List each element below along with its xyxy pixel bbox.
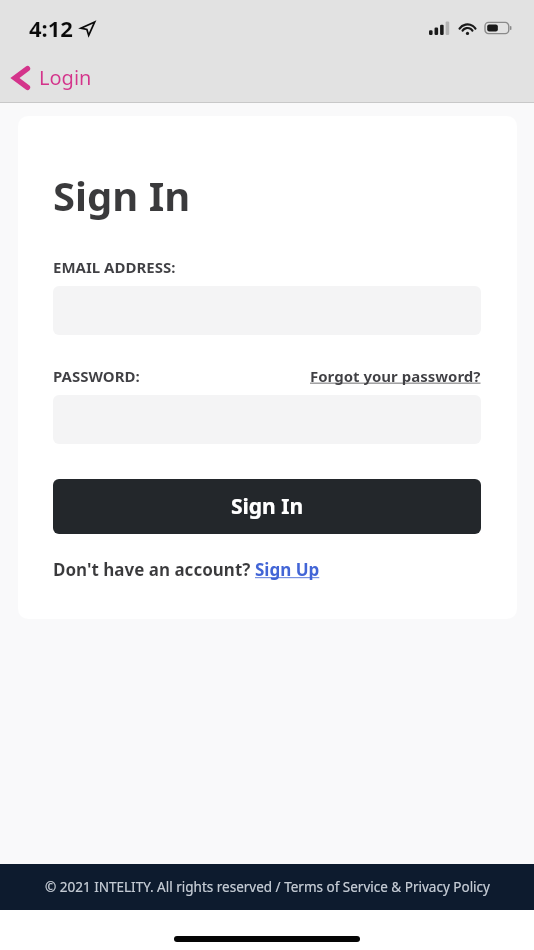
staticText: Don't have an account? — [53, 558, 255, 581]
staticText: 4:12 — [29, 13, 73, 43]
staticText: Sign In — [231, 492, 304, 521]
staticText: Sign Up — [255, 558, 320, 581]
staticText: EMAIL ADDRESS: — [53, 257, 176, 277]
staticText: Sign In — [53, 168, 191, 222]
staticText: Login — [39, 64, 92, 91]
button[interactable]: Forgot your password? — [310, 366, 481, 386]
staticText: © 2021 INTELITY. All rights reserved / T… — [45, 878, 490, 896]
button[interactable]: Login — [0, 58, 106, 97]
staticText: Forgot your password? — [310, 366, 481, 386]
button[interactable]: Sign In — [53, 479, 481, 534]
button[interactable]: Sign Up — [255, 558, 320, 581]
staticText: PASSWORD: — [53, 366, 140, 386]
